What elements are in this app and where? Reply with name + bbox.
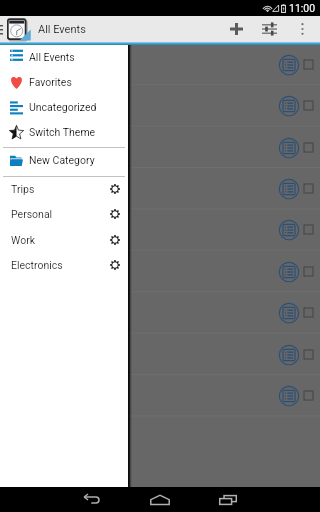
- button[interactable]: [0, 127, 320, 168]
- staticText: Personal: [11, 208, 53, 220]
- staticText: Trips: [11, 183, 35, 195]
- button[interactable]: All Events: [0, 44, 128, 69]
- button[interactable]: Work: [0, 227, 128, 252]
- button[interactable]: Open navigation drawer: [0, 17, 31, 41]
- button[interactable]: Home: [140, 487, 180, 512]
- button[interactable]: More options: [294, 16, 310, 42]
- button[interactable]: New Category: [0, 147, 128, 172]
- button[interactable]: Back: [72, 487, 112, 512]
- staticText: 11:00: [289, 2, 316, 14]
- button[interactable]: Add event: [223, 16, 249, 42]
- button[interactable]: Category settings: [105, 179, 125, 199]
- button[interactable]: Category settings: [105, 255, 125, 275]
- button[interactable]: Uncategorized: [0, 94, 128, 119]
- button[interactable]: Category settings: [105, 230, 125, 250]
- staticText: Favorites: [29, 76, 72, 88]
- staticText: Electronics: [11, 259, 63, 271]
- button[interactable]: Personal: [0, 201, 128, 226]
- button[interactable]: Switch Theme: [0, 119, 128, 144]
- button[interactable]: Recent apps: [208, 487, 248, 512]
- button[interactable]: Filter: [256, 16, 282, 42]
- button[interactable]: [0, 85, 320, 126]
- button[interactable]: [0, 44, 320, 85]
- button[interactable]: [0, 168, 320, 209]
- staticText: Work: [11, 234, 36, 246]
- staticText: New Category: [29, 154, 95, 166]
- button[interactable]: [0, 209, 320, 250]
- button[interactable]: Category settings: [105, 204, 125, 224]
- button[interactable]: [0, 334, 320, 375]
- staticText: Switch Theme: [29, 126, 96, 138]
- button[interactable]: Trips: [0, 176, 128, 201]
- button[interactable]: [0, 251, 320, 292]
- button[interactable]: [0, 375, 320, 416]
- staticText: All Events: [29, 51, 75, 63]
- staticText: All Events: [38, 23, 86, 36]
- button[interactable]: Favorites: [0, 69, 128, 94]
- button[interactable]: [0, 292, 320, 333]
- staticText: Uncategorized: [29, 101, 97, 113]
- button[interactable]: Electronics: [0, 252, 128, 277]
